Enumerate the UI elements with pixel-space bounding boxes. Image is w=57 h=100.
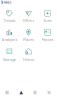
staticText: Storage	[3, 57, 16, 62]
staticText: Home	[23, 57, 34, 62]
staticText: Tickets	[3, 18, 15, 23]
staticText: Passes	[41, 37, 53, 42]
button[interactable]: Discover tab	[0, 0, 57, 100]
button[interactable]: Messages tab	[0, 0, 57, 100]
button[interactable]: Offers	[0, 0, 57, 100]
button[interactable]: Passes	[0, 0, 57, 100]
button[interactable]: Scan	[0, 0, 57, 100]
button[interactable]: Places	[0, 0, 57, 100]
button[interactable]: Home	[0, 0, 57, 100]
button[interactable]: Storage	[0, 0, 57, 100]
button[interactable]: Home tab	[0, 0, 57, 100]
button[interactable]: Tickets	[0, 0, 57, 100]
button[interactable]: Analytics	[0, 0, 57, 100]
button[interactable]: Profile tab	[0, 0, 57, 100]
staticText: Analytics	[1, 37, 17, 42]
staticText: Services	[1, 1, 11, 4]
staticText: Places	[23, 37, 34, 42]
staticText: Offers	[22, 18, 34, 23]
staticText: Scan	[43, 18, 51, 23]
